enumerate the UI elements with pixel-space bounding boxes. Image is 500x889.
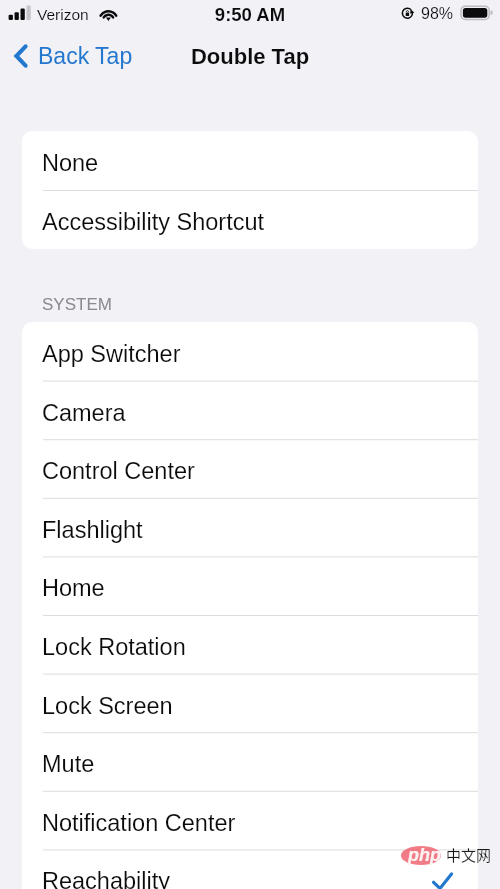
staticText: Lock Rotation (42, 634, 186, 660)
button[interactable]: Lock Rotation (22, 615, 478, 674)
button[interactable]: Mute (22, 732, 478, 791)
staticText: Lock Screen (42, 693, 173, 719)
staticText: Notification Center (42, 810, 236, 836)
staticText: Accessibility Shortcut (42, 209, 265, 235)
staticText: Camera (42, 400, 126, 426)
staticText: php (408, 845, 441, 865)
button[interactable]: Back Tap (0, 38, 145, 74)
staticText: 9:50 AM (0, 4, 500, 25)
button[interactable]: Home (22, 556, 478, 615)
staticText: Mute (42, 751, 95, 777)
button[interactable]: Accessibility Shortcut (22, 190, 478, 249)
staticText: 中文网 (446, 844, 492, 866)
button[interactable]: Control Center (22, 439, 478, 498)
staticText: Verizon (37, 6, 89, 23)
staticText: Reachability (42, 868, 171, 889)
staticText: SYSTEM (42, 295, 112, 314)
staticText: None (42, 150, 99, 176)
button[interactable]: Camera (22, 381, 478, 440)
staticText: 98% (421, 5, 454, 23)
button[interactable]: None (22, 131, 478, 190)
other: Selected (432, 873, 453, 889)
staticText: Home (42, 575, 105, 601)
staticText: Back Tap (38, 43, 133, 69)
button[interactable]: Lock Screen (22, 674, 478, 733)
button[interactable]: Reachability (22, 849, 478, 889)
button[interactable]: Notification Center (22, 791, 478, 850)
staticText: Double Tap (0, 44, 500, 69)
button[interactable]: App Switcher (22, 322, 478, 381)
staticText: Control Center (42, 458, 195, 484)
staticText: Flashlight (42, 517, 143, 543)
staticText: App Switcher (42, 341, 181, 367)
button[interactable]: Flashlight (22, 498, 478, 557)
